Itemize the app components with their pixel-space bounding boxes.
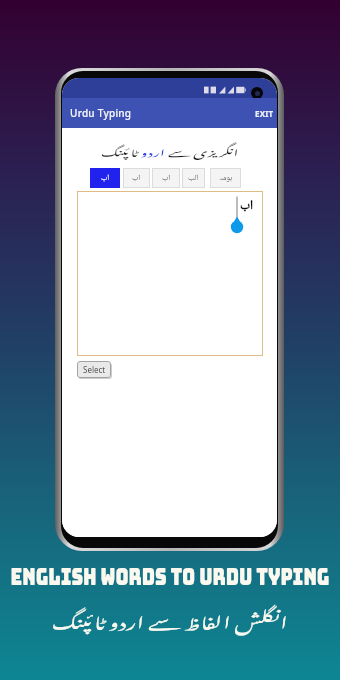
staticText: انگریزی سے اردو ٹائپنگ: [62, 140, 277, 163]
button[interactable]: Select: [77, 361, 111, 378]
staticText: الب: [188, 171, 199, 185]
staticText: اب: [240, 195, 254, 217]
button[interactable]: اب: [123, 168, 150, 188]
staticText: اب: [101, 171, 110, 185]
staticText: Select: [83, 364, 106, 375]
staticText: اب: [132, 171, 141, 185]
button[interactable]: اب: [152, 168, 180, 188]
staticText: انگلش الفاظ سے اردو ٹائپنگ: [0, 600, 340, 640]
button[interactable]: ہومہ: [210, 168, 241, 188]
staticText: اب: [162, 171, 171, 185]
button[interactable]: EXIT: [252, 98, 277, 128]
staticText: ENGLISH WORDS TO URDU TYPING: [0, 562, 340, 588]
staticText: Urdu Typing: [70, 106, 132, 120]
staticText: ہومہ: [219, 171, 233, 185]
staticText: EXIT: [255, 108, 274, 119]
button[interactable]: الب: [182, 168, 205, 188]
button[interactable]: اب: [90, 168, 120, 188]
